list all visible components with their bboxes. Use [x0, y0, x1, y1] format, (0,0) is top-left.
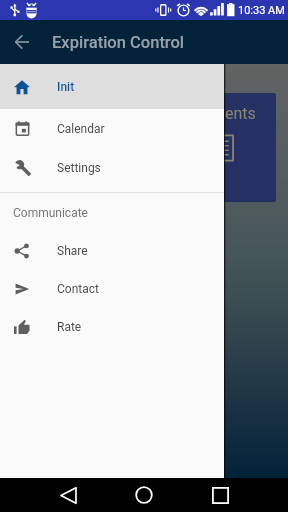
staticText: Documents — [174, 104, 256, 123]
button[interactable]: Contact — [0, 270, 224, 308]
staticText: Rate — [57, 320, 82, 334]
button[interactable]: Recents — [196, 478, 244, 512]
button[interactable]: Settings — [0, 148, 224, 187]
button[interactable]: Rate — [0, 308, 224, 346]
staticText: Settings — [57, 161, 101, 175]
button[interactable]: Back — [0, 20, 44, 64]
button[interactable]: Documents — [150, 93, 276, 202]
staticText: Calendar — [57, 122, 105, 136]
button[interactable]: Calendar — [0, 109, 224, 148]
button[interactable]: Init — [0, 64, 224, 109]
button[interactable]: Share — [0, 232, 224, 270]
staticText: Init — [57, 80, 75, 94]
button[interactable]: Back — [44, 478, 92, 512]
staticText: Communicate — [13, 206, 88, 220]
button[interactable]: Products — [12, 93, 138, 202]
staticText: Contact — [57, 282, 99, 296]
staticText: Share — [57, 244, 88, 258]
button[interactable]: Home — [120, 478, 168, 512]
staticText: Expiration Control — [52, 33, 184, 52]
staticText: 10:33 AM — [238, 4, 285, 17]
staticText: Products — [45, 104, 110, 123]
